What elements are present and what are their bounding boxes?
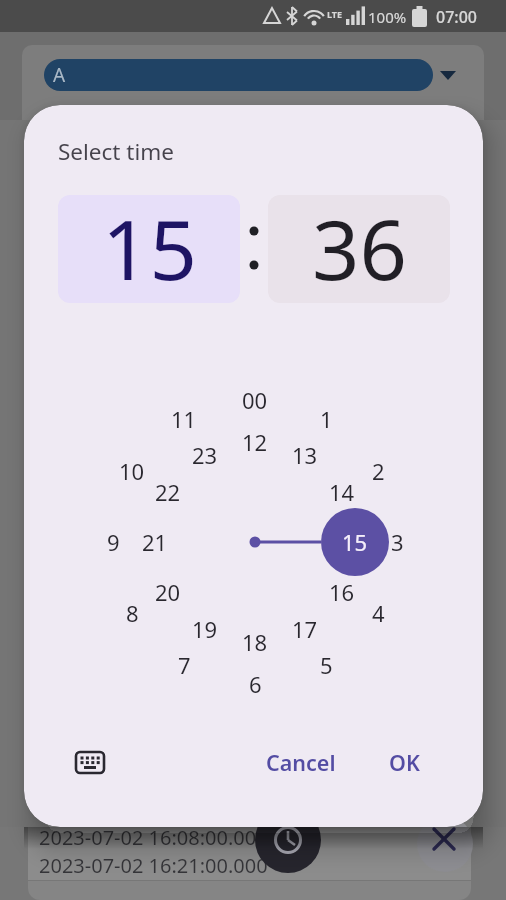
button[interactable]: 4 <box>353 598 403 628</box>
button[interactable]: 14 <box>317 477 367 507</box>
staticText: 13 <box>292 440 318 470</box>
staticText: OK <box>389 748 420 777</box>
button[interactable]: 22 <box>143 477 193 507</box>
staticText: 20 <box>155 577 181 607</box>
staticText: 3 <box>391 527 404 557</box>
button[interactable]: 12 <box>230 427 280 457</box>
staticText: 10 <box>119 456 145 486</box>
staticText: 17 <box>292 614 318 644</box>
staticText: 2 <box>372 456 385 486</box>
button[interactable]: 1 <box>301 404 351 434</box>
staticText: A <box>53 62 66 88</box>
button[interactable]: 00 <box>230 385 280 415</box>
staticText: 15 <box>342 527 368 557</box>
staticText: 21 <box>142 527 168 557</box>
button[interactable]: 13 <box>280 440 330 470</box>
button[interactable] <box>44 59 433 91</box>
button[interactable]: 9 <box>88 527 138 557</box>
staticText: 2023-07-02 16:08:00.00 <box>39 824 257 851</box>
staticText: 11 <box>171 404 197 434</box>
button[interactable]: 6 <box>230 669 280 699</box>
staticText: 5 <box>320 650 333 680</box>
button[interactable]: 18 <box>230 627 280 657</box>
staticText: 18 <box>242 627 268 657</box>
staticText: 8 <box>126 598 139 628</box>
staticText: 9 <box>107 527 120 557</box>
button[interactable]: 8 <box>107 598 157 628</box>
button[interactable]: OK <box>369 738 439 786</box>
staticText: 00 <box>242 385 268 415</box>
button[interactable]: 20 <box>143 577 193 607</box>
button[interactable] <box>417 816 473 872</box>
button[interactable]: 23 <box>180 440 230 470</box>
staticText: 4 <box>372 598 385 628</box>
button[interactable]: 21 <box>130 527 180 557</box>
staticText: Select time <box>58 136 174 167</box>
staticText: 100% <box>368 7 407 27</box>
staticText: 12 <box>242 427 268 457</box>
button[interactable]: 5 <box>301 650 351 680</box>
staticText: 14 <box>329 477 355 507</box>
button[interactable]: 10 <box>107 456 157 486</box>
button[interactable]: 15 <box>330 527 380 557</box>
button[interactable] <box>63 740 115 784</box>
button[interactable]: 16 <box>317 577 367 607</box>
staticText: 6 <box>249 669 262 699</box>
staticText: 16 <box>329 577 355 607</box>
button[interactable]: 19 <box>180 614 230 644</box>
button[interactable]: 15 <box>58 195 240 303</box>
staticText: 07:00 <box>436 6 477 28</box>
staticText: 23 <box>192 440 218 470</box>
staticText: 22 <box>155 477 181 507</box>
button[interactable]: 17 <box>280 614 330 644</box>
button[interactable]: 3 <box>372 527 422 557</box>
staticText: 15 <box>102 195 197 299</box>
staticText: 19 <box>192 614 218 644</box>
staticText: Cancel <box>266 748 336 777</box>
button[interactable]: 36 <box>268 195 450 303</box>
staticText: 36 <box>312 195 407 299</box>
button[interactable]: 7 <box>159 650 209 680</box>
button[interactable]: 2 <box>353 456 403 486</box>
staticText: 2023-07-02 16:21:00.000 <box>39 852 268 879</box>
button[interactable]: 11 <box>159 404 209 434</box>
staticText: 7 <box>178 650 191 680</box>
button[interactable]: Cancel <box>246 738 356 786</box>
staticText: LTE <box>327 8 343 20</box>
staticText: 1 <box>320 404 333 434</box>
button[interactable] <box>255 807 321 873</box>
